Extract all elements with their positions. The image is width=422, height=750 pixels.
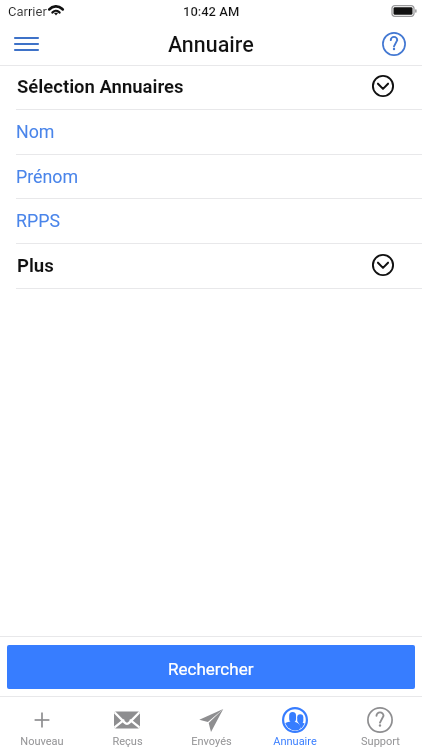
staticText: 10:42 AM [183,4,240,19]
staticText: Plus [17,255,54,277]
button[interactable]: Menu [4,22,48,66]
staticText: Nom [16,121,55,142]
staticText: Nouveau [20,735,64,748]
button[interactable]: Reçus [85,696,169,750]
button[interactable]: Nouveau [0,696,84,750]
button[interactable]: Rechercher [7,645,415,689]
button[interactable]: Help [372,22,416,66]
staticText: RPPS [16,210,60,231]
button[interactable]: Sélection Annuaires [0,66,422,110]
button[interactable]: Plus [0,244,422,289]
button[interactable]: Support [338,696,422,750]
staticText: Rechercher [168,659,254,679]
button[interactable]: Envoyés [169,696,253,750]
staticText: Reçus [112,735,143,748]
staticText: Carrier [8,4,47,19]
button[interactable]: Prénom [0,155,422,199]
staticText: Envoyés [191,735,232,748]
button[interactable]: Annuaire [253,696,337,750]
button[interactable]: Nom [0,110,422,155]
staticText: Prénom [16,166,79,187]
staticText: Support [361,735,400,748]
staticText: Sélection Annuaires [17,76,184,98]
button[interactable]: RPPS [0,199,422,244]
staticText: Annuaire [168,32,254,57]
staticText: Annuaire [273,735,317,748]
